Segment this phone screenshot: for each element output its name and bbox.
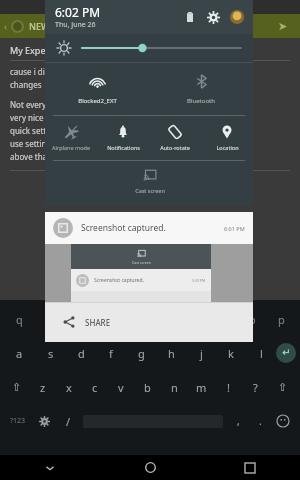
button[interactable]: ?	[242, 370, 269, 404]
staticText: ➤	[278, 20, 288, 33]
staticText: ⇧	[12, 381, 22, 394]
button[interactable]: q	[4, 302, 34, 336]
staticText: changes	[10, 79, 42, 90]
button[interactable]: Enter	[276, 343, 296, 363]
button[interactable]: ⇧	[269, 370, 296, 404]
button[interactable]: o	[238, 302, 267, 336]
button[interactable]: !	[215, 370, 242, 404]
button[interactable]: ?123	[5, 404, 31, 438]
staticText: Thu, June 26	[55, 20, 96, 30]
button[interactable]: v	[108, 370, 134, 404]
button[interactable]	[82, 39, 241, 57]
staticText: 6:02 PM	[55, 4, 101, 20]
button[interactable]: Keyboard settings	[31, 404, 57, 438]
button[interactable]: p	[267, 302, 296, 336]
staticText: ,	[237, 414, 240, 428]
button[interactable]: Airplane mode	[45, 116, 97, 160]
button[interactable]: Screenshot captured.	[45, 212, 253, 244]
staticText: b	[144, 380, 151, 395]
staticText: Not everything turned up	[10, 99, 106, 110]
button[interactable]: Settings	[205, 9, 221, 25]
button[interactable]: Cast screen	[115, 161, 184, 201]
button[interactable]: /	[57, 404, 79, 438]
staticText: x	[66, 380, 72, 395]
staticText: 5:59 PM	[192, 278, 206, 283]
button[interactable]: l	[246, 336, 276, 370]
button[interactable]: SHARE	[63, 302, 253, 342]
button[interactable]: Recent apps	[200, 455, 300, 480]
staticText: /	[66, 414, 71, 429]
button[interactable]: w	[34, 302, 64, 336]
staticText: ?123	[10, 416, 26, 426]
button[interactable]: t	[122, 302, 151, 336]
staticText: Screenshot captured.	[81, 222, 166, 234]
staticText: q	[16, 312, 23, 327]
button[interactable]: Home	[100, 455, 200, 480]
staticText: ?	[253, 380, 258, 395]
button[interactable]: ,	[227, 404, 249, 438]
staticText: Blocked2_EXT	[78, 97, 117, 105]
button[interactable]: g	[126, 336, 156, 370]
staticText: SHARE	[85, 317, 111, 328]
staticText: Screenshot captured.	[94, 277, 144, 284]
staticText: s	[48, 346, 54, 361]
button[interactable]: u	[180, 302, 209, 336]
button[interactable]: s	[35, 336, 66, 370]
staticText: k	[228, 346, 234, 361]
button[interactable]: f	[96, 336, 126, 370]
button[interactable]: k	[216, 336, 246, 370]
staticText: l	[260, 346, 263, 361]
staticText: g	[138, 346, 145, 361]
button[interactable]: c	[82, 370, 108, 404]
staticText: use settings done by	[10, 138, 88, 149]
button[interactable]: y	[151, 302, 180, 336]
button[interactable]: j	[186, 336, 216, 370]
button[interactable]: n	[161, 370, 188, 404]
button[interactable]: Blocked2_EXT	[45, 63, 149, 115]
button[interactable]: Auto-rotate	[149, 116, 201, 160]
button[interactable]: i	[209, 302, 238, 336]
staticText: Bluetooth	[187, 97, 215, 105]
staticText: d	[78, 346, 85, 361]
button[interactable]: Back	[0, 455, 100, 480]
button[interactable]: x	[56, 370, 82, 404]
button[interactable]: Location	[201, 116, 253, 160]
staticText: very nice but the	[10, 112, 73, 123]
staticText: ⇧	[278, 381, 288, 394]
staticText: ↵	[282, 347, 291, 359]
staticText: cause i didn't find any changes	[10, 66, 126, 77]
staticText: quick settings easy to	[10, 125, 91, 136]
staticText: Location	[216, 144, 239, 151]
button[interactable]: z	[30, 370, 56, 404]
button[interactable]: .	[249, 404, 271, 438]
button[interactable]: Notifications	[97, 116, 149, 160]
button[interactable]: b	[134, 370, 161, 404]
button[interactable]: Emoji	[271, 404, 295, 438]
button[interactable]: User profile	[229, 9, 245, 25]
staticText: o	[249, 312, 256, 327]
button[interactable]: m	[188, 370, 215, 404]
button[interactable]: ⇧	[4, 370, 30, 404]
button[interactable]: Bluetooth	[149, 63, 253, 115]
staticText: h	[168, 346, 175, 361]
button[interactable]: d	[66, 336, 96, 370]
button[interactable]: Brightness	[55, 39, 73, 57]
button[interactable]: e	[64, 302, 93, 336]
button[interactable]: h	[156, 336, 186, 370]
staticText: above that	[10, 151, 50, 162]
button[interactable]: r	[93, 302, 122, 336]
staticText: v	[118, 380, 124, 395]
button[interactable]: a	[4, 336, 35, 370]
staticText: Auto-rotate	[160, 144, 190, 151]
staticText: .	[259, 414, 262, 428]
staticText: Cast screen	[135, 187, 165, 194]
staticText: My Experience with the new design	[10, 44, 159, 56]
button[interactable]: Battery	[183, 10, 197, 24]
